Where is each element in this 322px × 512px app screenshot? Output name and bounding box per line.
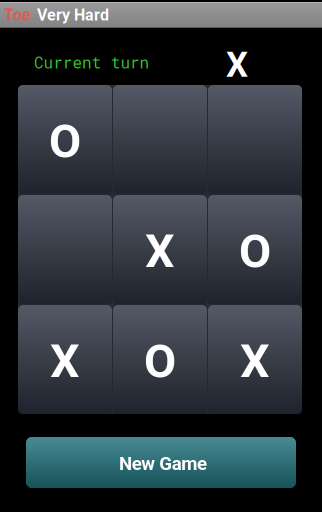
staticText: O (144, 334, 176, 389)
button[interactable]: Empty square (113, 85, 207, 194)
staticText: Very Hard (37, 6, 109, 24)
button[interactable]: O (208, 195, 302, 304)
button[interactable]: New Game (26, 437, 296, 488)
button[interactable]: X (208, 305, 302, 414)
staticText: X (226, 45, 248, 85)
staticText: Toe (4, 6, 31, 24)
button[interactable]: O (18, 85, 112, 194)
button[interactable]: Empty square (18, 195, 112, 304)
staticText: New Game (119, 453, 207, 474)
staticText: X (50, 334, 80, 389)
button[interactable]: X (18, 305, 112, 414)
staticText: O (49, 114, 81, 169)
staticText: X (240, 334, 270, 389)
button[interactable]: X (113, 195, 207, 304)
staticText: O (239, 224, 271, 279)
button[interactable]: Empty square (208, 85, 302, 194)
staticText: X (145, 224, 175, 279)
staticText: Current turn (34, 52, 150, 73)
button[interactable]: O (113, 305, 207, 414)
